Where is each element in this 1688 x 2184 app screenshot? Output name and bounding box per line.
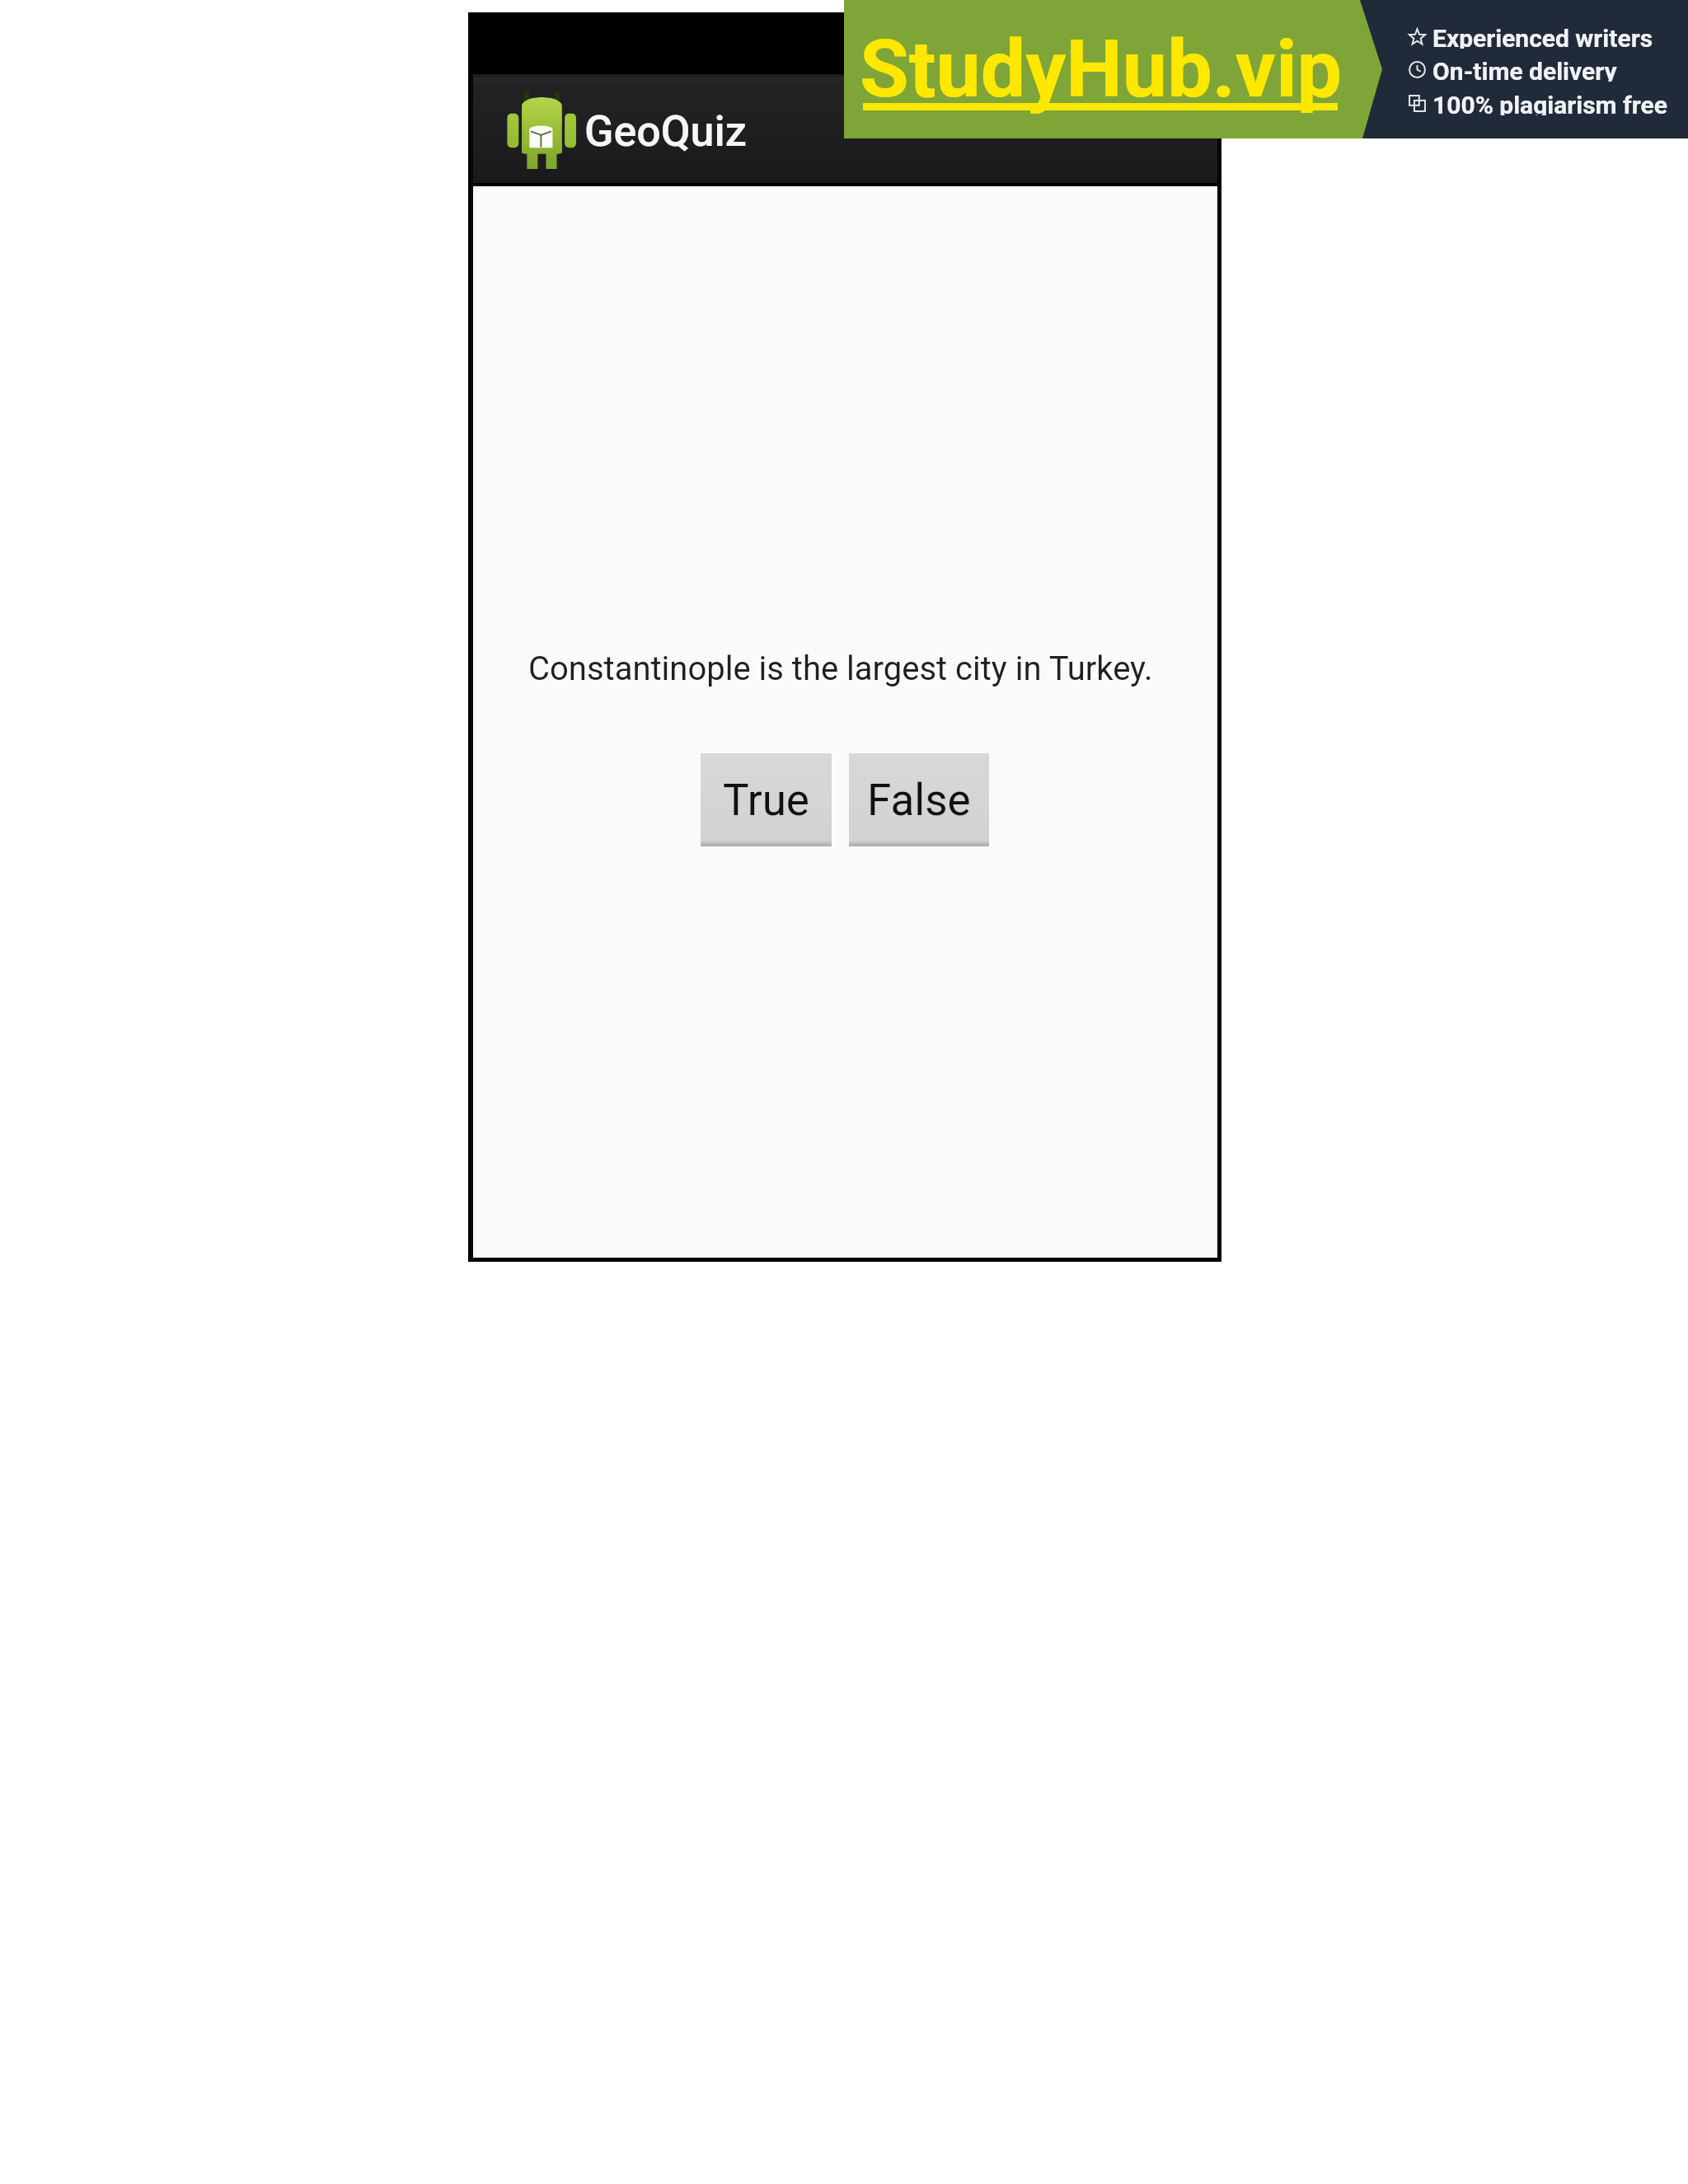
staticText: Constantinople is the largest city in Tu…	[528, 649, 1153, 688]
other: GeoQuiz app icon	[507, 91, 576, 169]
staticText: GeoQuiz	[584, 106, 747, 157]
staticText: StudyHub.vip	[860, 22, 1343, 116]
button[interactable]: True	[701, 753, 832, 846]
button[interactable]: False	[849, 753, 989, 846]
staticText: False	[867, 775, 971, 826]
staticText: 100% plagiarism free	[1432, 91, 1667, 115]
button[interactable]: StudyHub.vip	[844, 0, 1371, 138]
staticText: True	[723, 775, 809, 826]
staticText: Experienced writers	[1432, 24, 1653, 49]
button[interactable]: Experienced writers	[1409, 24, 1653, 49]
button[interactable]: GeoQuiz app icon	[473, 74, 1217, 185]
button[interactable]: 100% plagiarism free	[1409, 91, 1667, 115]
button[interactable]: On-time delivery	[1409, 57, 1617, 82]
staticText: On-time delivery	[1432, 57, 1617, 82]
